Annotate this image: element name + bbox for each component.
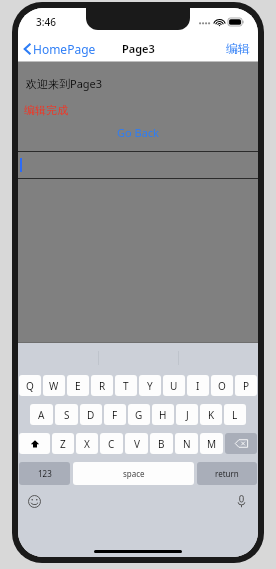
staticText: O <box>218 379 226 393</box>
button[interactable]: Q <box>19 375 41 396</box>
button[interactable]: HomePage <box>18 38 102 60</box>
button[interactable]: Backspace <box>225 433 257 454</box>
button[interactable]: X <box>76 433 98 454</box>
staticText: U <box>170 379 178 393</box>
staticText: T <box>123 379 129 393</box>
staticText: Z <box>60 437 66 451</box>
staticText: W <box>49 379 59 393</box>
button[interactable]: N <box>175 433 198 454</box>
button[interactable]: L <box>224 404 246 425</box>
staticText: space <box>123 468 145 479</box>
button[interactable]: R <box>91 375 113 396</box>
button[interactable]: P <box>235 375 257 396</box>
staticText: A <box>38 408 45 422</box>
staticText: return <box>215 468 239 479</box>
button[interactable]: V <box>125 433 148 454</box>
button[interactable]: U <box>163 375 185 396</box>
button[interactable]: 编辑 <box>218 38 258 59</box>
staticText: R <box>99 379 106 393</box>
button[interactable]: Y <box>139 375 161 396</box>
staticText: 3:46 <box>36 15 56 29</box>
button[interactable] <box>18 152 258 178</box>
button[interactable]: I <box>187 375 209 396</box>
staticText: I <box>196 379 200 393</box>
button[interactable]: return <box>197 462 257 485</box>
staticText: J <box>186 408 189 422</box>
button[interactable]: M <box>200 433 223 454</box>
staticText: HomePage <box>33 41 96 57</box>
button[interactable]: E <box>67 375 89 396</box>
button[interactable]: F <box>104 404 126 425</box>
staticText: E <box>75 379 81 393</box>
staticText: S <box>64 408 70 422</box>
button[interactable]: Emoji <box>26 493 43 510</box>
staticText: H <box>159 408 167 422</box>
button[interactable]: Go Back <box>109 123 167 142</box>
staticText: K <box>208 408 215 422</box>
button[interactable]: Dictation <box>235 493 248 510</box>
staticText: N <box>183 437 191 451</box>
button[interactable]: S <box>55 404 78 425</box>
button[interactable]: J <box>176 404 198 425</box>
button[interactable]: W <box>43 375 65 396</box>
staticText: Q <box>26 379 34 393</box>
staticText: P <box>243 379 250 393</box>
staticText: B <box>158 437 165 451</box>
staticText: C <box>108 437 115 451</box>
button[interactable]: B <box>150 433 173 454</box>
staticText: V <box>134 437 140 451</box>
button[interactable]: space <box>73 462 194 485</box>
button[interactable]: A <box>30 404 53 425</box>
button[interactable]: Shift <box>19 433 50 454</box>
staticText: Page3 <box>122 41 155 56</box>
staticText: 欢迎来到Page3 <box>26 76 103 91</box>
staticText: Y <box>147 379 153 393</box>
staticText: F <box>112 408 118 422</box>
button[interactable]: H <box>152 404 174 425</box>
button[interactable]: Z <box>52 433 74 454</box>
button[interactable]: D <box>80 404 102 425</box>
button[interactable]: 123 <box>19 462 70 485</box>
staticText: D <box>87 408 95 422</box>
staticText: L <box>232 408 238 422</box>
button[interactable]: C <box>100 433 123 454</box>
button[interactable]: T <box>115 375 137 396</box>
staticText: M <box>207 437 217 451</box>
button[interactable]: K <box>200 404 222 425</box>
staticText: X <box>84 437 90 451</box>
staticText: 123 <box>38 468 52 479</box>
button[interactable]: G <box>128 404 150 425</box>
staticText: 编辑完成 <box>24 103 68 117</box>
staticText: 编辑 <box>226 41 250 56</box>
staticText: G <box>135 408 143 422</box>
button[interactable]: O <box>211 375 233 396</box>
